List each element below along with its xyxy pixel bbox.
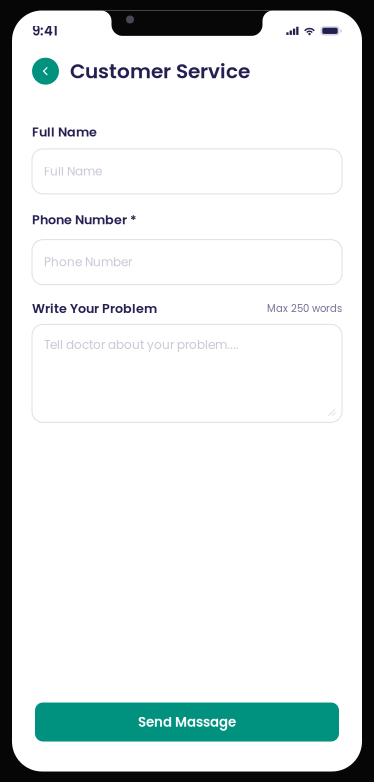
button[interactable]: Tell doctor about your problem.... bbox=[32, 324, 342, 422]
staticText: Tell doctor about your problem.... bbox=[44, 336, 239, 353]
staticText: Max 250 words bbox=[267, 301, 342, 315]
staticText: Phone Number bbox=[44, 254, 132, 270]
button[interactable]: Full Name bbox=[32, 149, 342, 194]
staticText: Customer Service bbox=[70, 57, 250, 85]
staticText: 9:41 bbox=[32, 21, 58, 40]
button[interactable]: Send Massage bbox=[35, 702, 339, 741]
button[interactable]: Phone Number bbox=[32, 240, 342, 285]
staticText: Phone Number * bbox=[32, 211, 137, 229]
staticText: Full Name bbox=[44, 163, 102, 180]
staticText: Write Your Problem bbox=[32, 300, 157, 317]
staticText: Send Massage bbox=[138, 713, 236, 731]
staticText: Full Name bbox=[32, 123, 97, 141]
button[interactable]: Back bbox=[32, 58, 59, 85]
